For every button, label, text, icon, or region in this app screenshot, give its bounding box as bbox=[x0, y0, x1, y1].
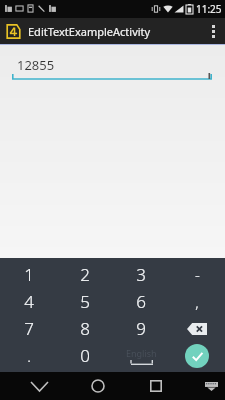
button[interactable]: 8 bbox=[57, 315, 113, 342]
staticText: 11:25 bbox=[196, 2, 222, 16]
button[interactable]: 3 bbox=[113, 260, 169, 288]
button[interactable]: 6 bbox=[113, 288, 169, 315]
button[interactable]: Space bbox=[113, 342, 169, 369]
button[interactable]: 1 bbox=[0, 260, 57, 288]
button[interactable]: Backspace bbox=[169, 315, 225, 342]
button[interactable]: 4 bbox=[0, 288, 57, 315]
button[interactable]: 5 bbox=[57, 288, 113, 315]
staticText: 6 bbox=[136, 290, 146, 313]
button[interactable]: Change keyboard bbox=[197, 372, 225, 400]
staticText: 9 bbox=[136, 317, 146, 340]
button[interactable]: , bbox=[169, 288, 225, 315]
button[interactable]: Enter bbox=[169, 342, 225, 369]
staticText: 4 bbox=[24, 290, 34, 313]
staticText: 5 bbox=[80, 290, 90, 313]
button[interactable]: More options bbox=[201, 18, 225, 44]
staticText: 0 bbox=[80, 344, 90, 367]
staticText: 7 bbox=[24, 317, 34, 340]
button[interactable]: Back bbox=[19, 372, 59, 400]
staticText: , bbox=[195, 292, 199, 312]
button[interactable]: 2 bbox=[57, 260, 113, 288]
button[interactable]: - bbox=[169, 260, 225, 288]
button[interactable]: 12855 bbox=[12, 55, 212, 81]
button[interactable]: Recent apps bbox=[136, 372, 176, 400]
staticText: 8 bbox=[80, 317, 90, 340]
staticText: EditTextExampleActivity bbox=[28, 24, 151, 39]
button[interactable]: 0 bbox=[57, 342, 113, 369]
staticText: 2 bbox=[80, 263, 90, 286]
staticText: - bbox=[195, 264, 200, 284]
staticText: 3 bbox=[136, 263, 146, 286]
button[interactable]: 9 bbox=[113, 315, 169, 342]
staticText: 1 bbox=[24, 263, 34, 286]
staticText: English bbox=[126, 347, 157, 359]
button[interactable]: Home bbox=[78, 372, 118, 400]
button[interactable]: . bbox=[0, 342, 57, 369]
button[interactable]: 7 bbox=[0, 315, 57, 342]
staticText: . bbox=[27, 346, 31, 366]
staticText: 12855 bbox=[17, 56, 55, 74]
